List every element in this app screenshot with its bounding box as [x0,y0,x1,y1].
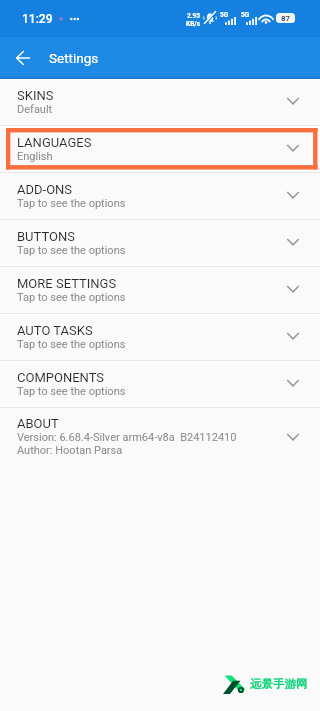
staticText: Tap to see the options [17,197,126,210]
staticText: English [17,150,53,163]
staticText: Version: 6.68.4-Silver arm64-v8a B241124… [17,431,237,444]
staticText: Tap to see the options [17,385,126,398]
button[interactable]: AUTO TASKS [0,314,320,360]
button[interactable]: ABOUT [0,408,320,460]
staticText: SKINS [17,88,54,103]
staticText: LANGUAGES [17,135,92,150]
staticText: KB/s [186,20,201,28]
staticText: 远景手游网 [250,677,308,691]
staticText: Tap to see the options [17,291,126,304]
staticText: Tap to see the options [17,244,126,257]
button[interactable]: Back [6,41,40,75]
staticText: AUTO TASKS [17,323,93,338]
staticText: Default [17,103,53,116]
staticText: Settings [49,50,99,66]
staticText: 11:29 [22,12,53,26]
button[interactable]: COMPONENTS [0,361,320,407]
staticText: Author: Hootan Parsa [17,444,123,457]
staticText: ABOUT [17,416,59,431]
staticText: Tap to see the options [17,338,126,351]
button[interactable]: BUTTONS [0,220,320,266]
button[interactable]: LANGUAGES [0,126,320,172]
button[interactable]: ADD-ONS [0,173,320,219]
button[interactable]: SKINS [0,79,320,125]
staticText: MORE SETTINGS [17,276,117,291]
staticText: 87 [281,14,291,23]
staticText: 5G [220,11,229,19]
staticText: 5G [241,11,250,19]
staticText: COMPONENTS [17,370,105,385]
staticText: ADD-ONS [17,182,73,197]
staticText: BUTTONS [17,229,75,244]
button[interactable]: MORE SETTINGS [0,267,320,313]
staticText: 2.95 [187,12,201,20]
